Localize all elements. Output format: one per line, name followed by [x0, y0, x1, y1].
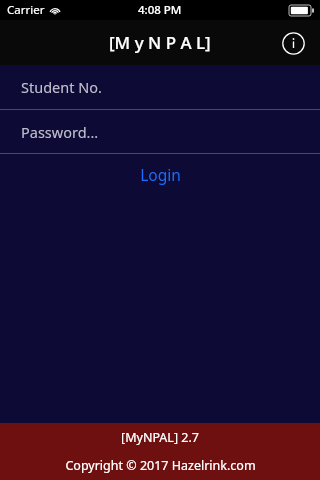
- staticText: Carrier: [7, 2, 45, 18]
- button[interactable]: Info: [276, 26, 310, 60]
- button[interactable]: Password...: [0, 110, 320, 153]
- staticText: [MyNPAL] 2.7: [121, 429, 199, 446]
- staticText: Student No.: [21, 77, 102, 97]
- button[interactable]: Student No.: [0, 65, 320, 109]
- staticText: Login: [140, 164, 181, 185]
- button[interactable]: Login: [0, 154, 320, 194]
- staticText: Copyright © 2017 Hazelrink.com: [65, 457, 256, 474]
- staticText: [M y N P A L]: [109, 31, 211, 54]
- staticText: 4:08 PM: [138, 2, 182, 18]
- staticText: Password...: [21, 122, 99, 142]
